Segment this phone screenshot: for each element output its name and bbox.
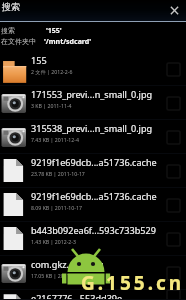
staticText: b443b092ea6f...593c733b529 [31, 224, 163, 236]
button[interactable]: b443b092ea6f...593c733b529 [0, 222, 186, 256]
button[interactable]: 315538_previ...n_small_0.jpg [0, 120, 186, 154]
staticText: 9219f1e69dcb...a51736.cache [31, 190, 163, 202]
button[interactable]: e2167776...553dd39e [0, 290, 186, 300]
staticText: 在文件夹中 [1, 37, 36, 46]
button[interactable]: 9219f1e69dcb...a51736.cache [0, 154, 186, 188]
staticText: '155' [46, 26, 62, 36]
button[interactable]: com.gkz...55.png [0, 256, 186, 290]
staticText: 8.09 KB | 2011-10-17 [31, 204, 155, 211]
button[interactable]: Close search [168, 4, 181, 17]
staticText: 9219f1e69dcb...a51736.cache [31, 156, 163, 168]
staticText: com.gkz...55.png [31, 258, 163, 270]
staticText: 3 KB | 2011-11-4 [31, 102, 155, 109]
staticText: 23.78 KB | 2011-10-17 [31, 170, 155, 177]
staticText: 1.43 KB | 2012-2-3 [31, 238, 155, 245]
staticText: 2 文件 | 2012-2-6 [31, 68, 155, 75]
button[interactable]: 9219f1e69dcb...a51736.cache [0, 188, 186, 222]
button[interactable]: 171553_previ...n_small_0.jpg [0, 86, 186, 120]
staticText: 7.43 KB | 2011-12-4 [31, 136, 155, 143]
staticText: 171553_previ...n_small_0.jpg [31, 88, 163, 100]
staticText: e2167776...553dd39e [31, 292, 163, 300]
staticText: 17.05 KB | 2011-11-4 [31, 272, 155, 279]
staticText: '/mnt/sdcard' [44, 37, 92, 47]
staticText: 155 [31, 54, 163, 66]
staticText: 搜索 [2, 1, 20, 12]
button[interactable]: 155 [0, 52, 186, 86]
staticText: 315538_previ...n_small_0.jpg [31, 122, 163, 134]
staticText: 搜索 [1, 26, 15, 35]
staticText: G.155.cn [81, 270, 185, 296]
